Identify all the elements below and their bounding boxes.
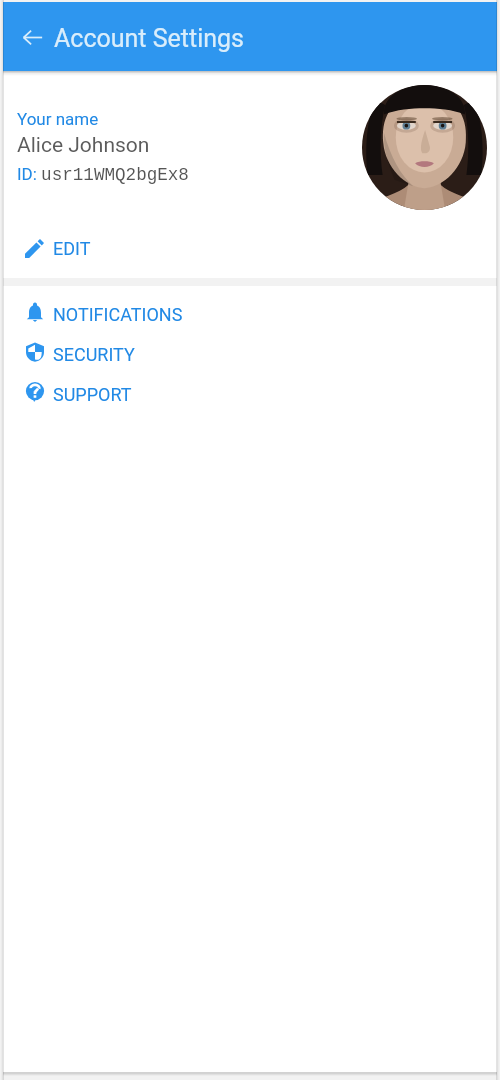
button[interactable]: SUPPORT [3, 374, 497, 414]
staticText: SECURITY [53, 344, 135, 365]
staticText: Account Settings [54, 24, 244, 53]
staticText: ID: usr11WMQ2bgEx8 [17, 164, 189, 185]
staticText: EDIT [53, 238, 91, 259]
staticText: Alice Johnson [17, 133, 150, 158]
button[interactable]: NOTIFICATIONS [3, 294, 497, 334]
button[interactable]: Back [12, 17, 52, 57]
staticText: Your name [17, 109, 99, 129]
button[interactable]: EDIT [24, 238, 91, 259]
staticText: NOTIFICATIONS [53, 304, 183, 325]
button[interactable]: SECURITY [3, 334, 497, 374]
staticText: SUPPORT [53, 384, 132, 405]
